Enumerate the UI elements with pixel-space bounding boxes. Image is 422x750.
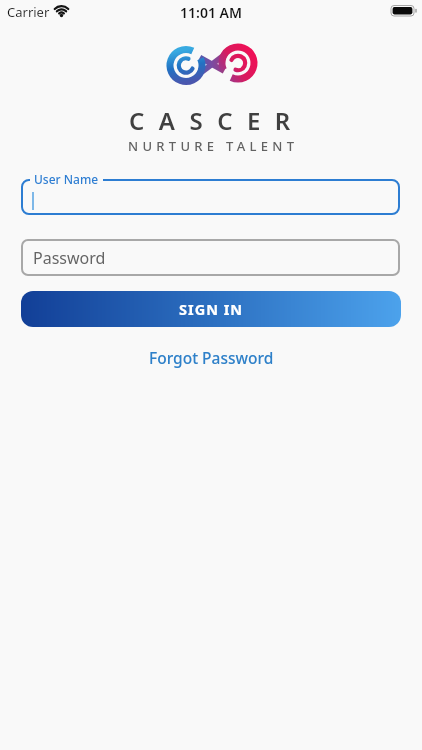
staticText: User Name <box>34 171 99 187</box>
staticText: SIGN IN <box>179 299 244 319</box>
button[interactable]: Password <box>21 239 400 276</box>
button[interactable]: SIGN IN <box>21 291 401 327</box>
staticText: Password <box>33 247 106 269</box>
staticText: 11:01 AM <box>180 3 242 22</box>
button[interactable] <box>21 179 400 215</box>
staticText: CASCER <box>129 104 305 137</box>
staticText: Forgot Password <box>149 347 274 368</box>
button[interactable]: Forgot Password <box>145 343 278 372</box>
staticText: NURTURE TALENT <box>128 137 299 155</box>
staticText: Carrier <box>7 3 50 21</box>
